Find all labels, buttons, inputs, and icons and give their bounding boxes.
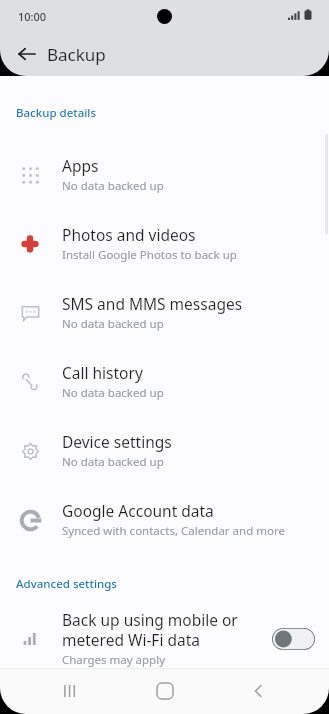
button[interactable]: Back up using mobile or metered Wi-Fi da…	[0, 609, 329, 668]
button[interactable]: Apps	[0, 140, 329, 209]
staticText: Backup details	[16, 105, 97, 121]
button[interactable]: Recent apps	[46, 668, 94, 714]
staticText: Google Account data	[62, 500, 214, 521]
staticText: SMS and MMS messages	[62, 293, 243, 314]
staticText: 10:00	[18, 9, 47, 24]
staticText: No data backed up	[62, 178, 164, 194]
staticText: Install Google Photos to back up	[62, 247, 237, 263]
staticText: Advanced settings	[16, 576, 117, 592]
staticText: No data backed up	[62, 454, 164, 470]
button[interactable]: Home	[141, 668, 189, 714]
button[interactable]: Photos and videos	[0, 209, 329, 278]
button[interactable]: Call history	[0, 347, 329, 416]
staticText: Charges may apply	[62, 652, 166, 668]
staticText: Photos and videos	[62, 224, 196, 245]
button[interactable]: Google Account data	[0, 485, 329, 554]
staticText: No data backed up	[62, 385, 164, 401]
button[interactable]: Back	[235, 668, 283, 714]
staticText: Call history	[62, 362, 143, 383]
staticText: Device settings	[62, 431, 172, 452]
staticText: Backup	[47, 43, 106, 66]
button[interactable]: Back	[12, 39, 42, 69]
staticText: Synced with contacts, Calendar and more	[62, 523, 285, 539]
button[interactable]: Back up using mobile or metered Wi-Fi da…	[272, 628, 315, 650]
button[interactable]: Device settings	[0, 416, 329, 485]
staticText: No data backed up	[62, 316, 164, 332]
staticText: Back up using mobile or metered Wi-Fi da…	[62, 609, 238, 650]
button[interactable]: SMS and MMS messages	[0, 278, 329, 347]
staticText: Apps	[62, 155, 99, 176]
